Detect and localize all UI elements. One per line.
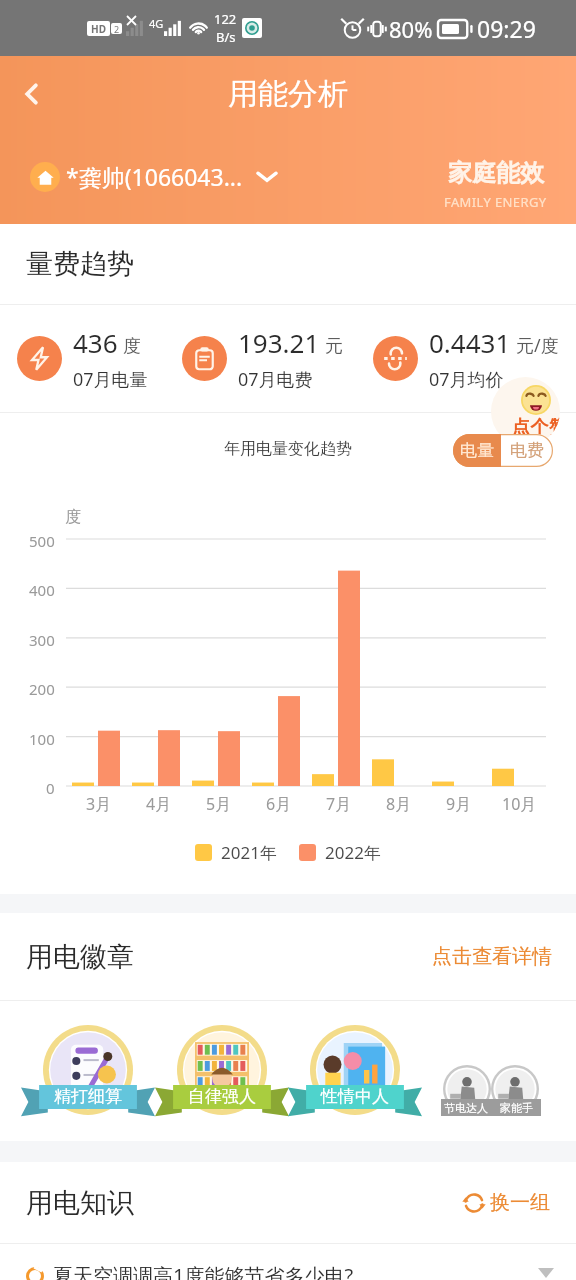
staticText: 夏天空调调高1度能够节省多少电? (53, 1262, 354, 1280)
staticText: FAMILY ENERGY (444, 193, 547, 211)
button[interactable]: Locked badges (443, 1001, 543, 1141)
staticText: 500 (29, 531, 55, 551)
staticText: 10月 (502, 793, 537, 815)
staticText: 09:29 (477, 13, 536, 44)
staticText: 用能分析 (228, 75, 348, 113)
staticText: 度 (123, 335, 141, 358)
staticText: 2021年 (221, 841, 277, 864)
button[interactable]: *龚帅(1066043... (30, 161, 279, 192)
button[interactable]: 性情中人 (288, 1001, 422, 1141)
button[interactable]: 点击查看详情 (432, 944, 552, 969)
staticText: 100 (29, 729, 55, 749)
button[interactable]: 电量 (453, 434, 501, 467)
staticText: 8月 (386, 793, 412, 815)
staticText: 7月 (326, 793, 352, 815)
button[interactable]: 自律强人 (155, 1001, 289, 1141)
staticText: 300 (29, 630, 55, 650)
staticText: 性情中人 (321, 1086, 389, 1107)
staticText: 0 (46, 778, 55, 798)
staticText: 元 (325, 335, 343, 358)
staticText: 07月电量 (73, 367, 148, 392)
staticText: 精打细算 (54, 1086, 122, 1107)
staticText: *龚帅(1066043... (66, 161, 243, 192)
staticText: 点个赞 (512, 416, 560, 439)
staticText: 07月均价 (429, 367, 504, 392)
staticText: 家能手 (500, 1101, 533, 1115)
button[interactable]: 电费 (501, 434, 553, 467)
staticText: HD (91, 22, 106, 36)
staticText: 电量 (460, 440, 494, 461)
staticText: 4月 (146, 793, 172, 815)
staticText: 元/度 (516, 333, 559, 358)
staticText: 400 (29, 580, 55, 600)
staticText: 122 (214, 10, 237, 28)
staticText: 3月 (86, 793, 112, 815)
staticText: 193.21 (238, 325, 320, 360)
staticText: 量费趋势 (26, 247, 134, 281)
staticText: 电费 (510, 440, 544, 461)
staticText: 6月 (266, 793, 292, 815)
staticText: 2 (114, 23, 120, 34)
staticText: 2022年 (325, 841, 381, 864)
staticText: 自律强人 (188, 1086, 256, 1107)
staticText: 80% (389, 14, 433, 44)
staticText: 换一组 (490, 1190, 550, 1215)
staticText: B/s (216, 28, 236, 46)
staticText: 4G (149, 16, 164, 31)
staticText: 年用电量变化趋势 (224, 439, 352, 459)
button[interactable]: 精打细算 (21, 1001, 155, 1141)
staticText: 家庭能效 (448, 158, 544, 188)
staticText: 436 (73, 325, 118, 360)
staticText: 度 (65, 507, 81, 527)
staticText: 5月 (206, 793, 232, 815)
staticText: 点击查看详情 (432, 944, 552, 969)
staticText: 用电知识 (26, 1186, 134, 1220)
button[interactable]: 夏天空调调高1度能够节省多少电? (0, 1244, 576, 1280)
staticText: 0.4431 (429, 325, 511, 360)
staticText: 节电达人 (444, 1101, 488, 1115)
staticText: 用电徽章 (26, 940, 134, 974)
staticText: 200 (29, 679, 55, 699)
staticText: 9月 (446, 793, 472, 815)
button[interactable]: Back (8, 70, 56, 118)
button[interactable]: Give a like (491, 377, 560, 446)
button[interactable]: 换一组 (460, 1190, 550, 1215)
staticText: 07月电费 (238, 367, 313, 392)
